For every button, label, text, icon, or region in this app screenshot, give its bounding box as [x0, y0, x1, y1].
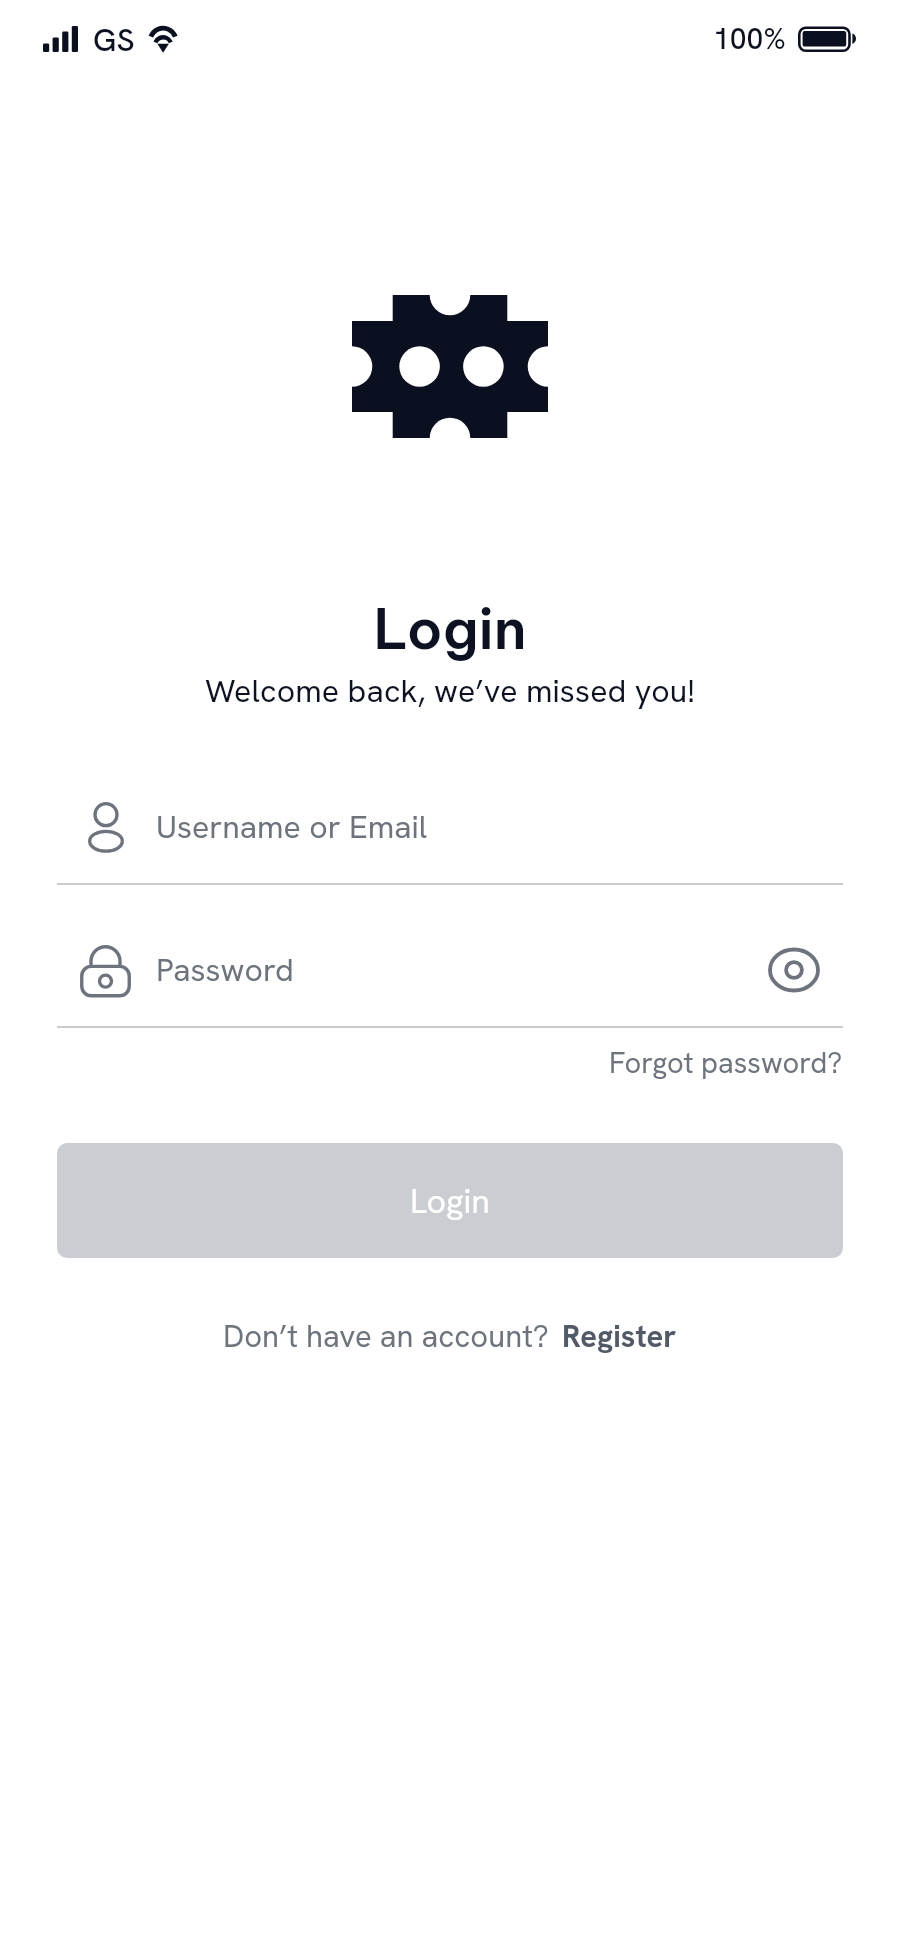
staticText: GS — [93, 19, 135, 61]
staticText: Password — [156, 949, 769, 991]
staticText: Login — [0, 594, 900, 664]
button[interactable]: Forgot password? — [609, 1044, 843, 1082]
staticText: Forgot password? — [609, 1044, 843, 1082]
button[interactable]: Show password — [769, 945, 819, 995]
button[interactable]: Username or Email — [0, 771, 900, 885]
staticText: Register — [562, 1316, 677, 1356]
staticText: Username or Email — [156, 806, 428, 848]
button[interactable]: Don’t have an account? — [223, 1316, 677, 1356]
button[interactable]: Login — [57, 1143, 843, 1258]
staticText: Welcome back, we’ve missed you! — [0, 670, 900, 712]
staticText: Don’t have an account? — [223, 1316, 557, 1356]
staticText: Login — [410, 1179, 490, 1223]
staticText: 100% — [713, 19, 786, 58]
button[interactable]: Password — [0, 914, 900, 1028]
